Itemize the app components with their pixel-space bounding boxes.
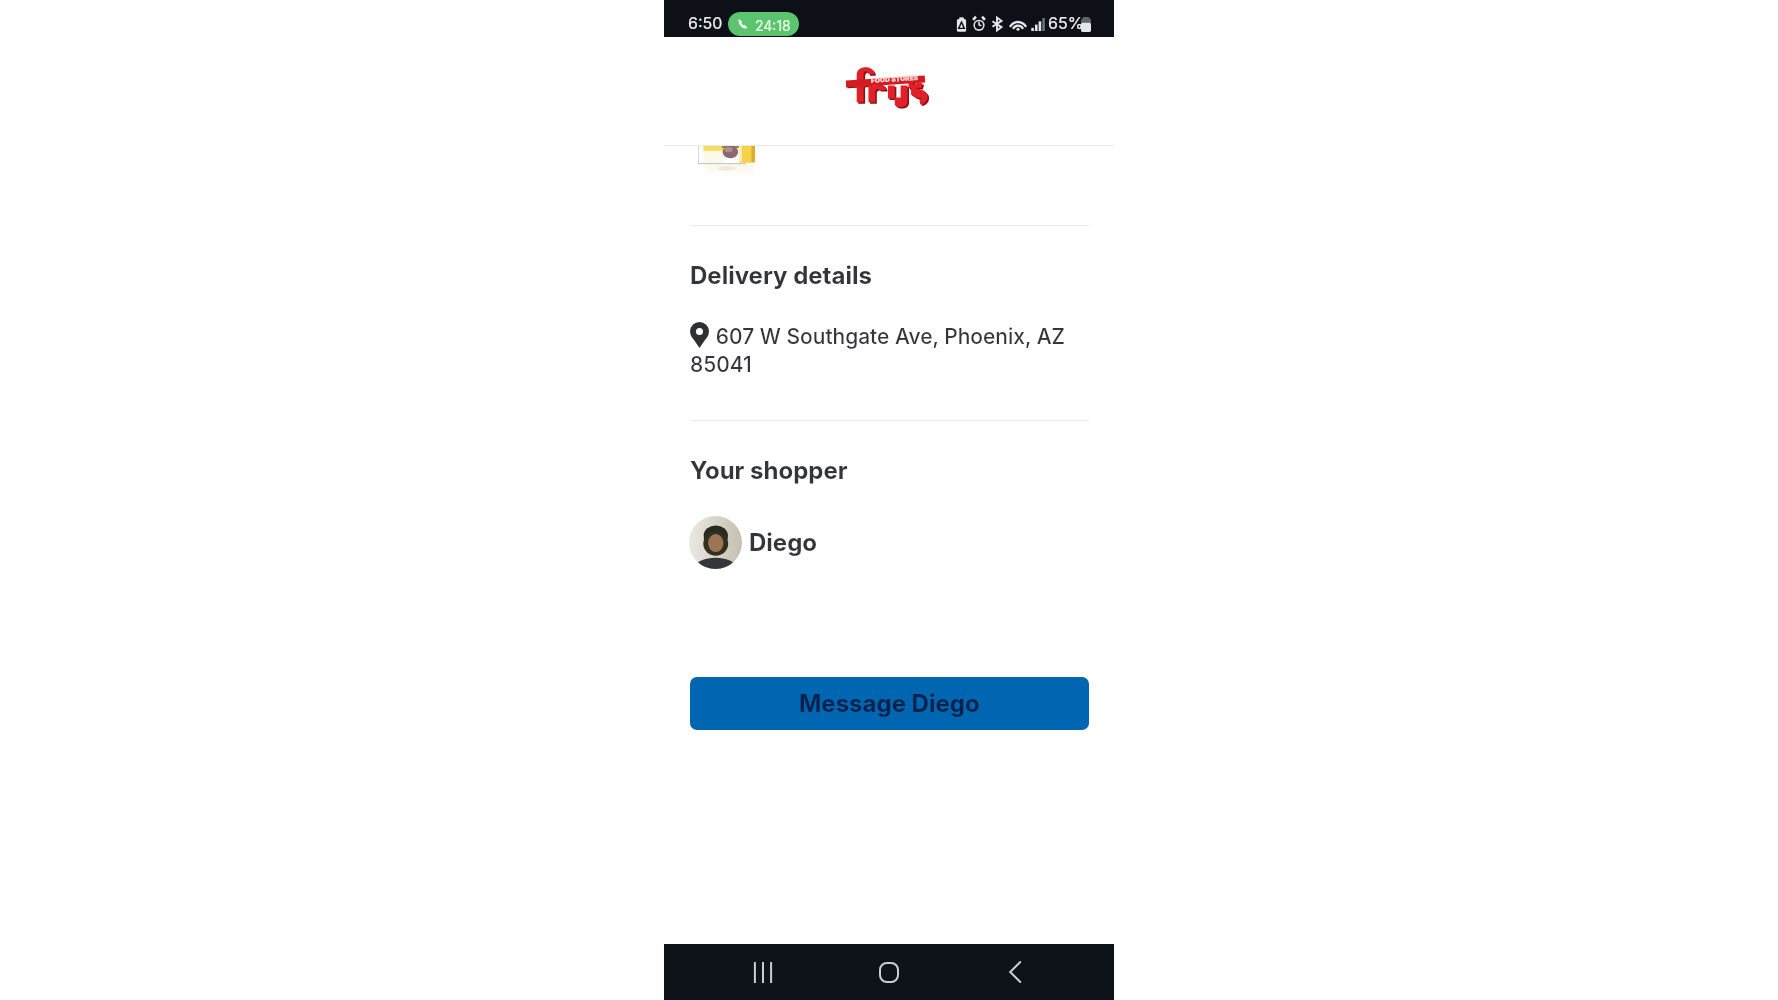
staticText: 65%: [1048, 13, 1084, 32]
button[interactable]: Home: [826, 944, 952, 1000]
button[interactable]: 607 W Southgate Ave, Phoenix, AZ 85041: [690, 324, 1090, 377]
staticText: Diego: [749, 528, 818, 557]
staticText: Message Diego: [799, 689, 980, 718]
staticText: 24:18: [755, 17, 791, 34]
staticText: Delivery details: [690, 261, 872, 290]
button[interactable]: Back: [952, 944, 1078, 1000]
button[interactable]: Diego: [689, 516, 839, 569]
staticText: FOOD STORES: [871, 74, 919, 85]
staticText: Your shopper: [690, 456, 848, 485]
staticText: 6:50: [688, 13, 723, 32]
button[interactable]: Message Diego: [690, 677, 1089, 730]
button[interactable]: Recent apps: [700, 944, 826, 1000]
staticText: 607 W Southgate Ave, Phoenix, AZ 85041: [690, 324, 1090, 377]
